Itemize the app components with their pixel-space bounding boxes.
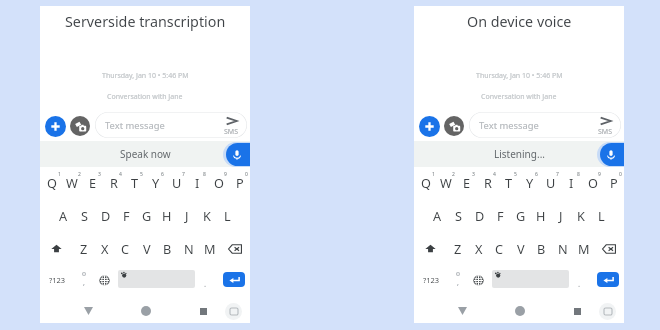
button[interactable]: K (571, 203, 591, 228)
staticText: A (433, 207, 442, 224)
button[interactable]: 4 (477, 166, 498, 191)
button[interactable]: Recent apps (567, 296, 588, 326)
button[interactable]: Space (118, 270, 195, 288)
button[interactable]: S (74, 203, 95, 228)
button[interactable]: , (75, 267, 92, 293)
button[interactable]: 4 (103, 166, 124, 191)
staticText: N (184, 240, 194, 257)
staticText: On device voice (467, 12, 572, 31)
button[interactable]: M (199, 236, 220, 261)
button[interactable]: Change keyboard language (95, 267, 114, 293)
button[interactable]: 7 (166, 166, 187, 191)
button[interactable]: C (489, 236, 510, 261)
button[interactable]: , (449, 267, 466, 293)
button[interactable]: Back (78, 296, 98, 326)
button[interactable]: 6 (145, 166, 166, 191)
button[interactable]: M (573, 236, 594, 261)
staticText: ?123 (423, 275, 440, 285)
button[interactable]: V (136, 236, 157, 261)
staticText: 3 (98, 171, 101, 178)
button[interactable]: New message attachment (419, 116, 440, 137)
button[interactable]: N (552, 236, 573, 261)
button[interactable]: L (591, 203, 611, 228)
staticText: B (537, 240, 546, 257)
button[interactable]: 7 (540, 166, 561, 191)
button[interactable]: 0 (603, 166, 624, 191)
button[interactable]: D (95, 203, 116, 228)
button[interactable]: Back (452, 296, 472, 326)
button[interactable]: 1 (42, 166, 62, 191)
button[interactable]: H (157, 203, 177, 228)
button[interactable]: Z (447, 236, 468, 261)
button[interactable]: 9 (208, 166, 229, 191)
button[interactable]: X (468, 236, 489, 261)
staticText: 9 (598, 171, 601, 178)
button[interactable]: Change keyboard language (469, 267, 488, 293)
staticText: 0 (619, 171, 622, 178)
button[interactable]: ?123 (418, 267, 445, 293)
button[interactable]: Shift (40, 236, 73, 261)
button[interactable]: 0 (229, 166, 250, 191)
button[interactable]: C (115, 236, 136, 261)
staticText: L (224, 207, 231, 224)
button[interactable]: 2 (62, 166, 82, 191)
button[interactable]: N (178, 236, 199, 261)
button[interactable]: 8 (561, 166, 582, 191)
button[interactable]: ?123 (44, 267, 71, 293)
staticText: 7 (556, 171, 559, 178)
button[interactable]: Microphone (600, 143, 624, 166)
button[interactable]: F (116, 203, 137, 228)
button[interactable]: H (531, 203, 551, 228)
button[interactable]: Home (135, 296, 156, 326)
button[interactable]: Camera (444, 116, 464, 136)
button[interactable]: S (448, 203, 469, 228)
button[interactable]: J (551, 203, 571, 228)
button[interactable]: Backspace (220, 236, 250, 261)
button[interactable]: New message attachment (45, 116, 66, 137)
button[interactable]: B (531, 236, 552, 261)
button[interactable]: 8 (187, 166, 208, 191)
button[interactable]: Text message (469, 112, 621, 138)
button[interactable]: B (157, 236, 178, 261)
button[interactable]: Camera (70, 116, 90, 136)
button[interactable]: A (427, 203, 448, 228)
staticText: O (214, 174, 224, 191)
button[interactable]: . (196, 267, 214, 293)
button[interactable]: G (137, 203, 157, 228)
button[interactable]: Home (509, 296, 530, 326)
button[interactable]: D (469, 203, 490, 228)
button[interactable]: G (511, 203, 531, 228)
button[interactable]: 1 (416, 166, 436, 191)
staticText: , (83, 278, 85, 288)
button[interactable]: Rotate screen (597, 296, 618, 326)
button[interactable]: F (490, 203, 511, 228)
button[interactable]: Rotate screen (223, 296, 244, 326)
button[interactable]: 5 (498, 166, 519, 191)
staticText: K (203, 207, 211, 224)
button[interactable]: J (177, 203, 197, 228)
button[interactable]: Backspace (594, 236, 624, 261)
button[interactable]: Recent apps (193, 296, 214, 326)
button[interactable]: K (197, 203, 217, 228)
button[interactable]: 6 (519, 166, 540, 191)
staticText: X (101, 240, 109, 257)
button[interactable]: 2 (436, 166, 456, 191)
button[interactable]: Enter (223, 272, 245, 287)
button[interactable]: Text message (95, 112, 247, 138)
button[interactable]: A (53, 203, 74, 228)
button[interactable]: Z (73, 236, 94, 261)
button[interactable]: 5 (124, 166, 145, 191)
button[interactable]: V (510, 236, 531, 261)
button[interactable]: Shift (414, 236, 447, 261)
button[interactable]: Microphone (226, 143, 250, 166)
button[interactable]: X (94, 236, 115, 261)
button[interactable]: 3 (456, 166, 477, 191)
button[interactable]: 3 (82, 166, 103, 191)
button[interactable]: . (570, 267, 588, 293)
button[interactable]: Space (492, 270, 569, 288)
staticText: , (457, 278, 459, 288)
button[interactable]: Enter (597, 272, 619, 287)
button[interactable]: L (217, 203, 237, 228)
button[interactable]: 9 (582, 166, 603, 191)
staticText: F (123, 207, 130, 224)
